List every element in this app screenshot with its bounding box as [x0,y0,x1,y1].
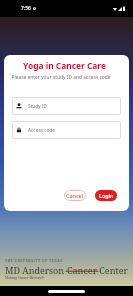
other: Alarm [33,7,36,10]
staticText: Please enter your study ID and access co… [11,74,111,81]
button[interactable]: Cancel [64,190,86,201]
staticText: Access code [28,127,56,134]
staticText: Cancel [66,192,84,199]
button[interactable]: Login [95,190,117,201]
staticText: Center [97,264,128,276]
staticText: 7:56 [21,5,31,12]
staticText: THE UNIVERSITY OF TEXAS [5,258,63,263]
staticText: Login [99,192,114,199]
staticText: MD Anderson [5,264,67,276]
staticText: Making Cancer History® [5,275,44,279]
staticText: Study ID [28,103,48,110]
staticText: Cancer [67,264,97,276]
button[interactable]: Study ID [12,97,121,115]
button[interactable]: Access code [12,121,121,139]
staticText: Yoga in Cancer Care [23,60,106,71]
